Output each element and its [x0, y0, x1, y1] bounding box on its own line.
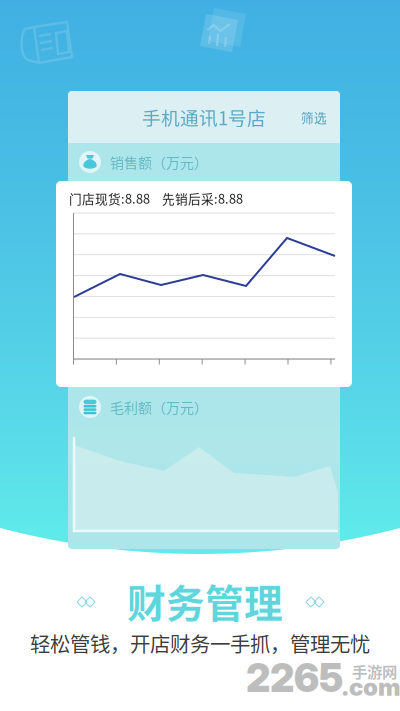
- staticText: 筛选: [301, 108, 327, 126]
- staticText: 手游网: [352, 660, 397, 682]
- staticText: 财务管理: [127, 573, 283, 629]
- staticText: 轻松管钱，开店财务一手抓，管理无忧: [30, 628, 370, 658]
- staticText: 手机通讯1号店: [142, 103, 266, 130]
- button[interactable]: 手机通讯1号店: [68, 91, 268, 143]
- staticText: 门店现货:8.88 先销后采:8.88: [69, 189, 243, 207]
- button[interactable]: 销售额（万元）: [68, 143, 340, 181]
- button[interactable]: 筛选: [68, 91, 112, 143]
- button[interactable]: 毛利额（万元）: [68, 388, 340, 426]
- staticText: .com: [341, 672, 400, 701]
- staticText: 毛利额（万元）: [110, 397, 208, 417]
- staticText: 销售额（万元）: [110, 152, 208, 172]
- staticText: 2265: [246, 655, 343, 701]
